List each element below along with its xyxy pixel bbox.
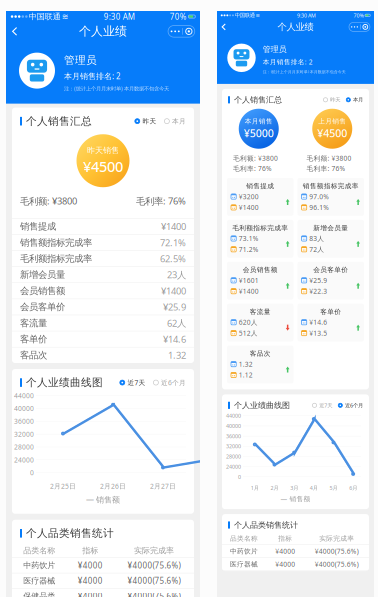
staticText: ¥4000 xyxy=(275,547,295,556)
staticText: 昨天 xyxy=(330,96,340,103)
button[interactable]: 本月 xyxy=(346,95,363,104)
button[interactable]: 更多 xyxy=(349,20,374,33)
staticText: 会员销售额 xyxy=(243,266,278,274)
button[interactable]: 客单价 xyxy=(297,304,364,341)
staticText: 620人 xyxy=(239,318,258,327)
staticText: 毛利率: 76% xyxy=(136,195,186,207)
staticText: 32000 xyxy=(226,443,241,450)
staticText: 注：(统计上个月月末时单) 本月数据不包含今天 xyxy=(263,69,346,74)
staticText: ¥4000 xyxy=(78,575,103,586)
staticText: ¥4000(75.6%) xyxy=(315,547,359,556)
staticText: ¥1400 xyxy=(239,203,259,212)
button[interactable]: 会员销售额 xyxy=(12,283,194,299)
button[interactable]: 销售额指标完成率 xyxy=(297,178,364,216)
staticText: 2月26日 xyxy=(100,482,126,491)
staticText: 客流量 xyxy=(250,308,271,316)
staticText: 40000 xyxy=(14,404,34,413)
button[interactable]: 客流量 xyxy=(12,315,194,331)
button[interactable]: 客单价 xyxy=(12,331,194,347)
staticText: 个人销售汇总 xyxy=(234,95,282,105)
staticText: 个人销售汇总 xyxy=(26,115,92,128)
staticText: 毛利率: 76% xyxy=(233,164,272,173)
staticText: 44000 xyxy=(14,391,34,400)
staticText: 28000 xyxy=(226,453,241,460)
staticText: 会员客单价 xyxy=(313,266,348,274)
staticText: ¥4500 xyxy=(317,126,347,140)
staticText: 0 xyxy=(238,473,241,480)
staticText: 医疗器械 xyxy=(23,576,55,586)
button[interactable]: 返回 xyxy=(217,21,231,32)
staticText: 3月 xyxy=(290,484,298,491)
staticText: 1.12 xyxy=(239,371,253,379)
staticText: 70% xyxy=(170,11,187,22)
button[interactable]: 新增会员量 xyxy=(297,220,364,258)
staticText: 新增会员量 xyxy=(20,269,65,280)
staticText: 个人业绩 xyxy=(79,24,127,39)
button[interactable]: 本月 xyxy=(164,116,186,126)
button[interactable]: 客品次 xyxy=(227,345,293,383)
staticText: 本月 xyxy=(172,117,186,125)
staticText: ¥1400 xyxy=(161,220,186,233)
button[interactable]: 近7天 xyxy=(312,401,332,410)
button[interactable]: 客品次 xyxy=(12,347,194,363)
staticText: 保健品类 xyxy=(23,591,55,597)
staticText: ¥5000 xyxy=(244,126,274,140)
staticText: 24000 xyxy=(226,463,241,470)
staticText: 注：(统计上个月月末时单) 本月数据不包含今天 xyxy=(64,85,169,92)
staticText: 会员销售额 xyxy=(20,285,65,297)
button[interactable]: 新增会员量 xyxy=(12,267,194,282)
staticText: 毛利额: ¥3800 xyxy=(233,154,278,163)
button[interactable]: 销售提成 xyxy=(12,219,194,234)
staticText: 中药饮片 xyxy=(230,547,258,555)
staticText: 个人品类销售统计 xyxy=(26,527,114,540)
staticText: ¥4000 xyxy=(78,591,103,597)
staticText: ¥25.9 xyxy=(309,276,327,285)
staticText: ¥14.6 xyxy=(309,318,327,327)
staticText: 24000 xyxy=(14,455,34,464)
staticText: ¥3200 xyxy=(239,192,259,201)
button[interactable]: 更多 xyxy=(168,24,200,39)
staticText: ¥1400 xyxy=(239,287,259,296)
staticText: 品类名称 xyxy=(230,534,258,543)
staticText: 管理员 xyxy=(263,44,287,54)
button[interactable]: 销售提成 xyxy=(227,178,293,216)
button[interactable]: 会员客单价 xyxy=(297,262,364,300)
staticText: 个人业绩 xyxy=(277,21,313,33)
staticText: 1月 xyxy=(251,484,259,491)
staticText: 4月 xyxy=(310,484,318,491)
staticText: 2月27日 xyxy=(150,482,176,491)
button[interactable]: 昨天 xyxy=(323,95,340,104)
button[interactable]: 毛利额指标完成率 xyxy=(227,220,293,258)
staticText: ¥4000(75.6%) xyxy=(315,560,359,569)
staticText: 中药饮片 xyxy=(23,560,55,570)
staticText: 客流量 xyxy=(20,317,47,329)
button[interactable]: 返回 xyxy=(6,24,23,38)
staticText: 医疗器械 xyxy=(230,560,258,568)
button[interactable]: 会员客单价 xyxy=(12,299,194,315)
button[interactable]: 近6个月 xyxy=(153,377,186,388)
staticText: 个人业绩曲线图 xyxy=(234,400,290,410)
staticText: 44000 xyxy=(226,412,241,419)
staticText: 个人品类销售统计 xyxy=(234,520,298,530)
staticText: 71.2% xyxy=(239,245,259,254)
staticText: 512人 xyxy=(239,329,258,338)
staticText: 0 xyxy=(30,468,34,477)
staticText: 2月 xyxy=(270,484,278,491)
staticText: 昨天 xyxy=(142,117,156,125)
button[interactable]: 毛利额指标完成率 xyxy=(12,251,194,266)
staticText: 个人业绩曲线图 xyxy=(26,376,103,389)
staticText: 本月销售排名: 2 xyxy=(263,57,313,66)
button[interactable]: 近6个月 xyxy=(338,401,363,410)
button[interactable]: 会员销售额 xyxy=(227,262,293,300)
button[interactable]: 昨天 xyxy=(135,116,156,126)
staticText: 本月销售排名: 2 xyxy=(64,71,121,81)
button[interactable]: 近7天 xyxy=(120,377,145,388)
staticText: 73.1% xyxy=(239,234,259,243)
staticText: 销售提成 xyxy=(20,221,56,232)
staticText: 毛利额: ¥3800 xyxy=(306,154,351,163)
staticText: ¥22.3 xyxy=(309,287,327,296)
button[interactable]: 客流量 xyxy=(227,304,293,341)
button[interactable]: 销售额指标完成率 xyxy=(12,235,194,250)
